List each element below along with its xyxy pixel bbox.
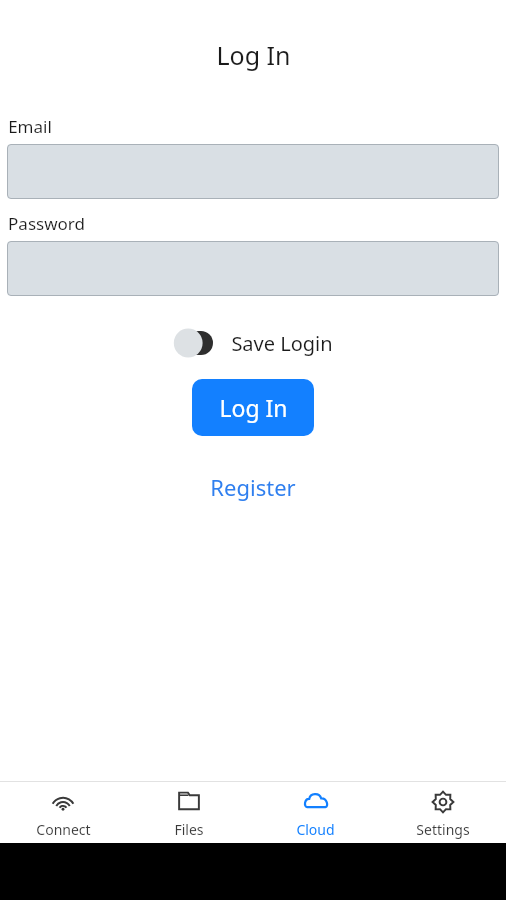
staticText: Log In: [216, 38, 291, 72]
button[interactable]: [7, 144, 499, 199]
staticText: Files: [174, 820, 204, 839]
button[interactable]: Cloud: [252, 781, 379, 843]
button[interactable]: Save Login: [171, 324, 335, 362]
staticText: Register: [210, 472, 296, 502]
staticText: Log In: [219, 392, 288, 423]
button[interactable]: Register: [200, 468, 306, 506]
button[interactable]: Files: [126, 781, 252, 843]
staticText: Connect: [36, 820, 91, 839]
staticText: Cloud: [296, 820, 335, 839]
staticText: Email: [8, 115, 52, 138]
button[interactable]: Settings: [379, 781, 506, 843]
staticText: Password: [8, 212, 85, 235]
staticText: Save Login: [231, 330, 333, 357]
button[interactable]: [7, 241, 499, 296]
button[interactable]: Log In: [192, 379, 314, 436]
button[interactable]: Connect: [0, 781, 126, 843]
staticText: Settings: [416, 820, 470, 839]
